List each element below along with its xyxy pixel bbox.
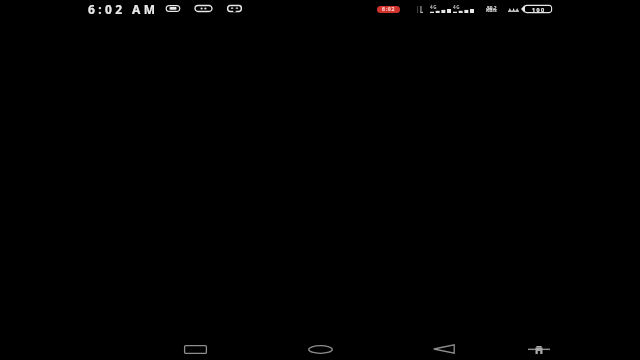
button[interactable]: Back xyxy=(414,338,474,360)
staticText: 4G xyxy=(453,4,461,10)
button[interactable]: Switch keyboard xyxy=(515,338,563,360)
staticText: 4G xyxy=(430,4,438,10)
button[interactable]: Home xyxy=(290,338,350,360)
staticText: 50.2 xyxy=(487,5,497,12)
button[interactable]: Recent apps xyxy=(165,338,225,360)
staticText: 100 xyxy=(532,6,546,13)
staticText: 6:02 xyxy=(382,6,396,13)
staticText: KB/s xyxy=(486,7,497,14)
staticText: 6:02 AM xyxy=(88,1,159,17)
